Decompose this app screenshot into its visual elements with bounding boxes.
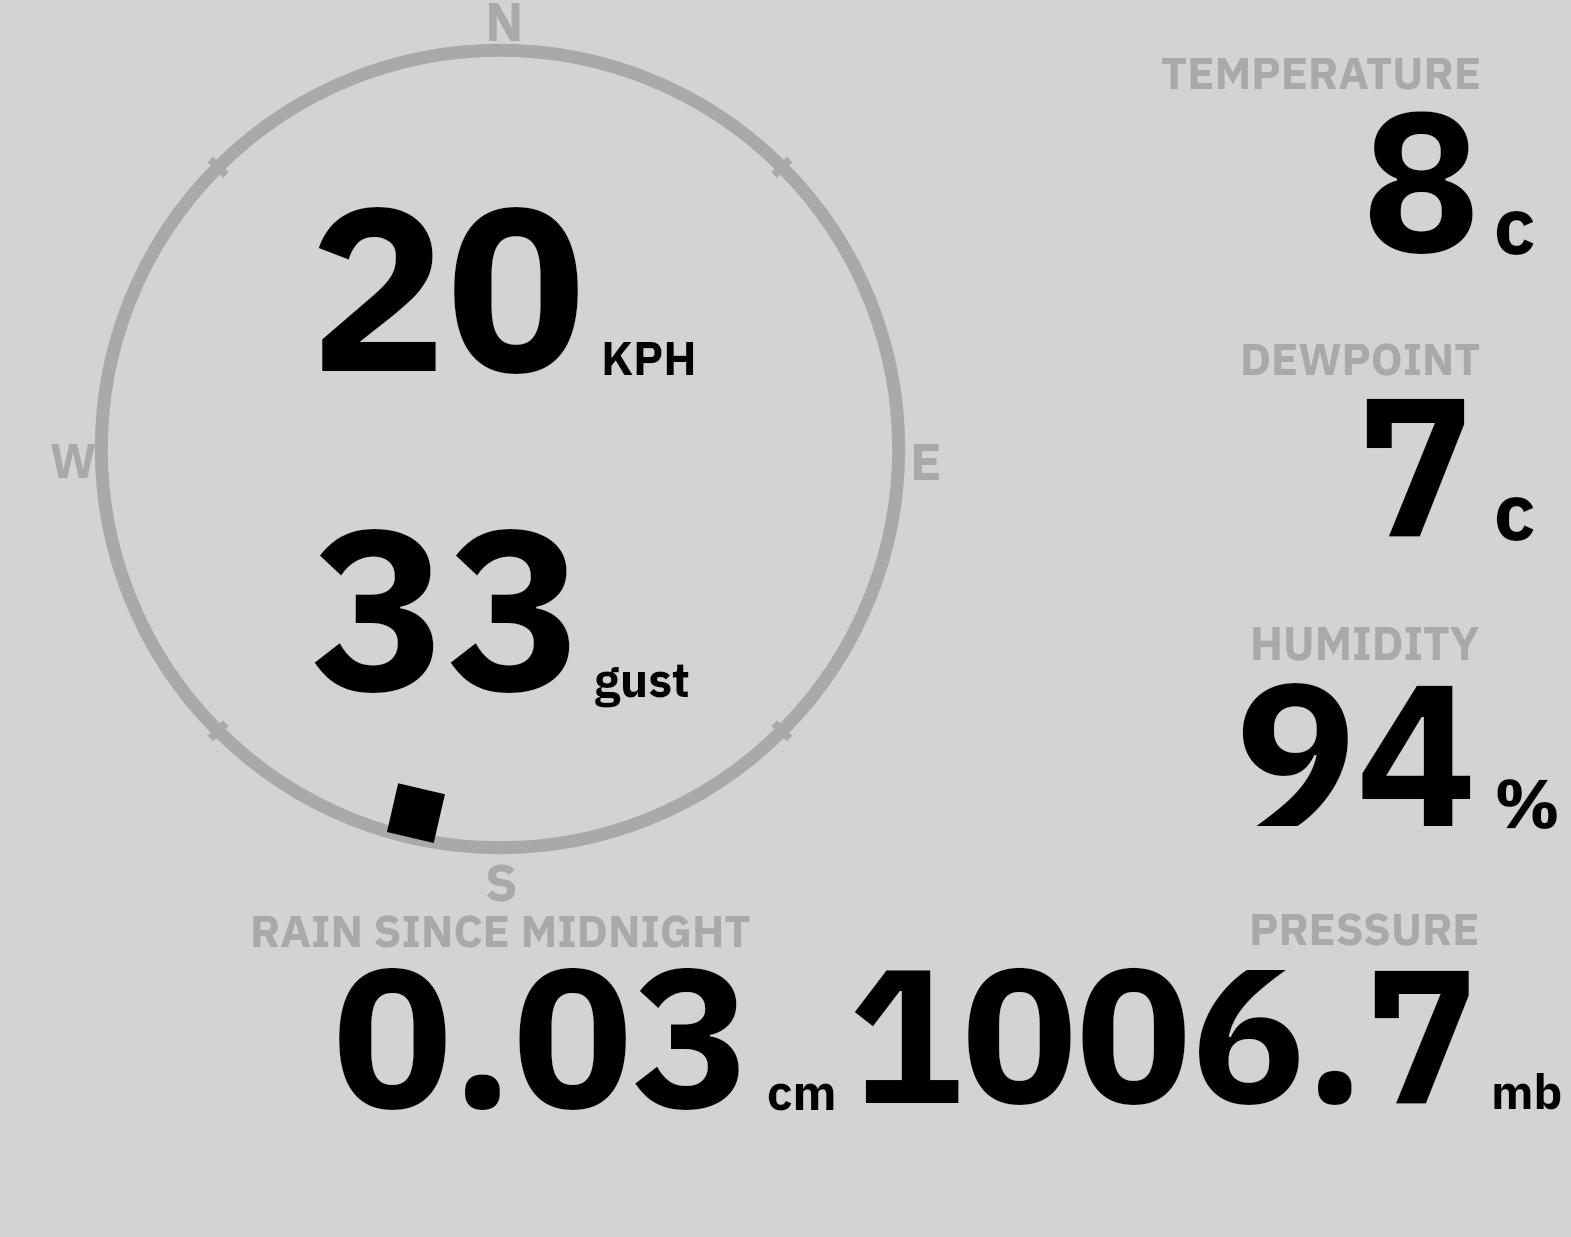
- staticText: c: [1494, 458, 1536, 562]
- button[interactable]: Dewpoint 7 degrees C: [1150, 325, 1571, 555]
- staticText: S: [485, 847, 518, 915]
- staticText: 33: [311, 458, 584, 753]
- button[interactable]: Temperature 8 degrees C: [1150, 40, 1571, 270]
- staticText: DEWPOINT: [1240, 329, 1481, 387]
- staticText: mb: [1491, 1060, 1563, 1122]
- staticText: 7: [1356, 335, 1475, 591]
- staticText: c: [1494, 172, 1536, 276]
- staticText: PRESSURE: [1249, 899, 1480, 957]
- button[interactable]: Rain since midnight 0.03 cm: [240, 895, 810, 1120]
- staticText: TEMPERATURE: [1161, 43, 1481, 101]
- button[interactable]: Pressure 1006.7 millibars: [820, 895, 1571, 1120]
- staticText: 0.03: [333, 905, 751, 1162]
- staticText: %: [1494, 758, 1561, 846]
- staticText: 94: [1236, 620, 1477, 881]
- staticText: 8: [1362, 50, 1481, 307]
- staticText: gust: [594, 648, 690, 710]
- staticText: E: [910, 427, 942, 495]
- staticText: KPH: [601, 328, 697, 388]
- staticText: N: [485, 0, 524, 56]
- staticText: cm: [767, 1059, 837, 1123]
- button[interactable]: Humidity 94 percent: [1150, 610, 1571, 840]
- button[interactable]: Wind direction compass, 20 KPH, gusting …: [95, 44, 905, 854]
- staticText: 20: [309, 135, 586, 434]
- staticText: HUMIDITY: [1250, 613, 1480, 672]
- staticText: W: [50, 429, 97, 491]
- staticText: RAIN SINCE MIDNIGHT: [250, 901, 751, 959]
- staticText: 1006.7: [848, 908, 1479, 1156]
